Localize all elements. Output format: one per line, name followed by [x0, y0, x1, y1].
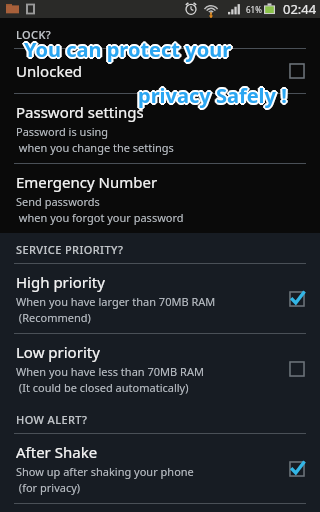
staticText: You can protect your — [24, 36, 232, 63]
staticText: when you change the settings — [16, 140, 174, 155]
staticText: privacy Safely ! — [138, 82, 287, 109]
staticText: You can protect your — [23, 35, 231, 62]
staticText: Emergency Number — [16, 172, 158, 192]
staticText: (It could be closed automatically) — [16, 380, 189, 395]
staticText: You can protect your — [24, 37, 232, 64]
staticText: privacy Safely ! — [137, 82, 286, 109]
staticText: LOCK? — [16, 27, 52, 42]
staticText: You can protect your — [26, 36, 234, 63]
button[interactable]: High priority toggle — [288, 290, 306, 308]
staticText: You can protect your — [23, 37, 231, 64]
button[interactable]: After Shake toggle — [288, 460, 306, 478]
staticText: Low priority — [16, 342, 100, 362]
staticText: privacy Safely ! — [138, 81, 287, 108]
button[interactable]: Unlocked toggle — [288, 62, 306, 80]
staticText: Password is using — [16, 124, 109, 139]
staticText: privacy Safely ! — [140, 82, 289, 109]
staticText: Password settings — [16, 102, 144, 122]
staticText: privacy Safely ! — [136, 82, 285, 109]
staticText: privacy Safely ! — [139, 82, 288, 109]
staticText: HOW ALERT? — [16, 412, 88, 427]
staticText: You can protect your — [24, 35, 232, 62]
staticText: privacy Safely ! — [137, 83, 286, 110]
staticText: (for privacy) — [16, 480, 81, 495]
staticText: 61% — [246, 4, 262, 15]
staticText: SERVICE PRIORITY? — [16, 242, 124, 257]
staticText: Send passwords — [16, 194, 100, 209]
staticText: You can protect your — [22, 36, 230, 63]
button[interactable]: After Shake — [0, 434, 320, 504]
button[interactable]: Unlocked — [0, 49, 320, 94]
staticText: privacy Safely ! — [138, 84, 287, 111]
staticText: When you have larger than 70MB RAM — [16, 294, 216, 309]
staticText: privacy Safely ! — [139, 83, 288, 110]
button[interactable]: High priority — [0, 264, 320, 334]
staticText: You can protect your — [25, 37, 233, 64]
button[interactable]: Emergency Number — [0, 164, 320, 233]
staticText: You can protect your — [24, 38, 232, 65]
staticText: privacy Safely ! — [138, 83, 287, 110]
other: Status bar — [0, 0, 320, 18]
staticText: Show up after shaking your phone — [16, 464, 194, 479]
staticText: privacy Safely ! — [137, 81, 286, 108]
staticText: when you forgot your password — [16, 210, 184, 225]
button[interactable]: Low priority toggle — [288, 360, 306, 378]
staticText: High priority — [16, 272, 105, 292]
staticText: You can protect your — [24, 34, 232, 61]
staticText: Unlocked — [16, 61, 83, 81]
staticText: You can protect your — [25, 35, 233, 62]
staticText: When you have less than 70MB RAM — [16, 364, 204, 379]
staticText: (Recommend) — [16, 310, 91, 325]
staticText: 02:44 — [283, 0, 317, 18]
button[interactable]: Low priority — [0, 334, 320, 403]
staticText: privacy Safely ! — [138, 80, 287, 107]
staticText: privacy Safely ! — [139, 81, 288, 108]
staticText: You can protect your — [23, 36, 231, 63]
button[interactable]: Password settings — [0, 94, 320, 164]
staticText: After Shake — [16, 442, 98, 462]
staticText: You can protect your — [25, 36, 233, 63]
